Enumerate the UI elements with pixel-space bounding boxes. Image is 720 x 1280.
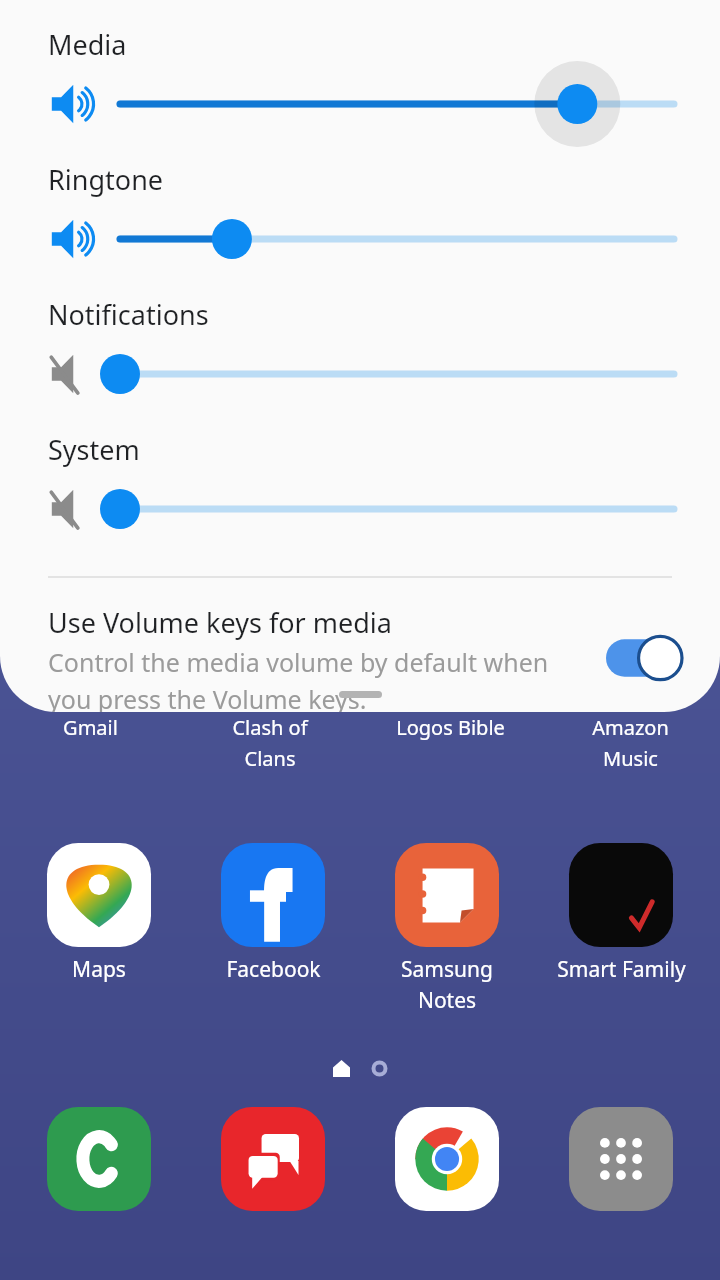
button[interactable]: Facebook [198,843,348,984]
staticText: Gmail [63,714,118,741]
staticText: Clash of Clans [232,714,308,772]
button[interactable]: Amazon Music [540,714,720,772]
other: Ringtone volume [46,210,104,268]
staticText: Maps [72,955,126,984]
staticText: Use Volume keys for media [48,604,392,641]
button[interactable]: Ringtone [0,161,720,268]
button[interactable]: Clash of Clans [180,714,360,772]
button[interactable]: Phone [24,1107,174,1219]
staticText: Samsung Notes [401,955,493,1014]
staticText: Amazon Music [592,714,669,772]
staticText: Media [48,26,127,63]
button[interactable]: Messages [198,1107,348,1219]
other: Media volume [46,75,104,133]
button[interactable]: Chrome [372,1107,522,1219]
other: Notifications muted [46,345,104,403]
button[interactable]: System [0,431,720,538]
button[interactable]: Collapse volume panel [339,691,382,698]
button[interactable]: Apps [546,1107,696,1219]
button[interactable]: Notifications [0,296,720,403]
button[interactable]: Maps [24,843,174,984]
button[interactable]: Use Volume keys for media, on [606,634,682,682]
staticText: Facebook [226,955,321,984]
staticText: Smart Family [557,955,686,984]
staticText: Control the media volume by default when… [48,645,549,712]
staticText: Logos Bible [396,714,505,741]
other: System muted [46,480,104,538]
staticText: Ringtone [48,161,164,198]
button[interactable]: Logos Bible [360,714,540,741]
button[interactable]: Samsung Notes [372,843,522,1014]
button[interactable]: Media [0,26,720,133]
button[interactable]: Gmail [0,714,180,741]
staticText: System [48,431,140,468]
staticText: Notifications [48,296,209,333]
button[interactable]: Use Volume keys for media [0,604,720,712]
button[interactable]: Smart Family [546,843,696,984]
